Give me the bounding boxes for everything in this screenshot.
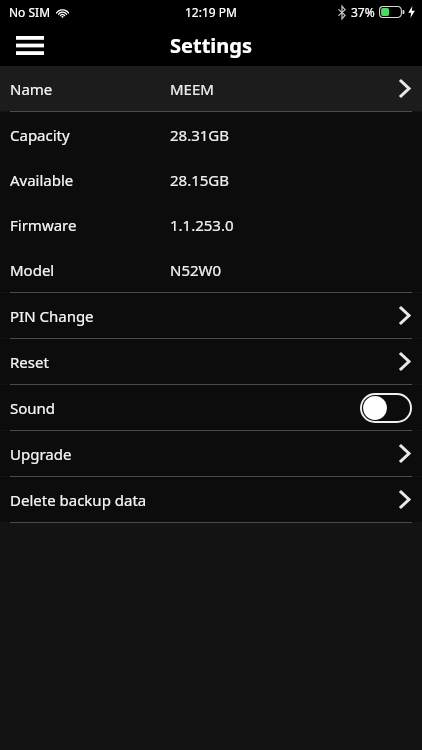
button[interactable]: Capacity [0, 112, 422, 157]
staticText: 1.1.253.0 [170, 215, 234, 235]
staticText: Available [10, 170, 74, 190]
staticText: Sound [10, 398, 56, 418]
staticText: MEEM [170, 79, 214, 99]
staticText: PIN Change [10, 306, 94, 326]
button[interactable]: Available [0, 157, 422, 202]
staticText: Model [10, 260, 55, 280]
staticText: 12:19 PM [185, 4, 237, 20]
staticText: Delete backup data [10, 490, 147, 510]
staticText: N52W0 [170, 260, 222, 280]
button[interactable]: Delete backup data [0, 477, 422, 522]
staticText: Settings [170, 32, 252, 59]
button[interactable]: Upgrade [0, 431, 422, 476]
button[interactable]: Menu [11, 30, 49, 60]
staticText: Reset [10, 352, 49, 372]
staticText: Firmware [10, 215, 77, 235]
button[interactable]: Reset [0, 339, 422, 384]
button[interactable]: Model [0, 247, 422, 292]
staticText: No SIM [9, 4, 51, 20]
staticText: 28.31GB [170, 125, 230, 145]
button[interactable]: Sound [0, 385, 422, 430]
staticText: Name [10, 79, 53, 99]
staticText: 37% [351, 4, 375, 20]
staticText: 28.15GB [170, 170, 230, 190]
button[interactable]: Firmware [0, 202, 422, 247]
staticText: Capacity [10, 125, 70, 145]
button[interactable]: Name [0, 66, 422, 111]
staticText: Upgrade [10, 444, 72, 464]
button[interactable]: PIN Change [0, 293, 422, 338]
